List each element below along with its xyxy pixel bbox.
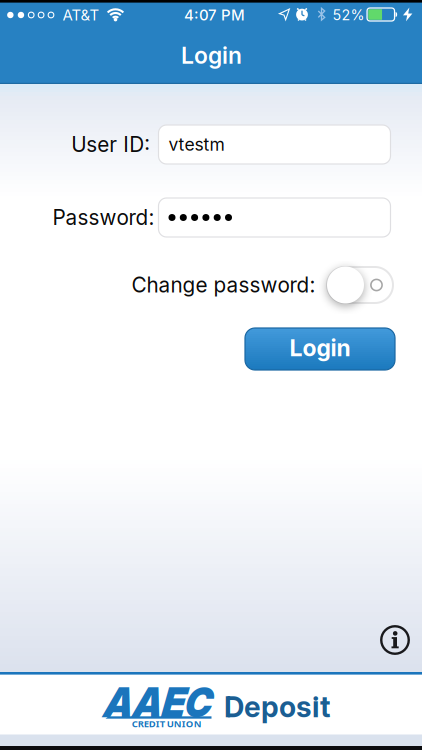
button[interactable]: Change password — [326, 266, 394, 304]
staticText: Password: — [52, 205, 154, 230]
staticText: Change password: — [131, 272, 315, 298]
button[interactable]: Info — [380, 625, 410, 655]
staticText: CREDIT UNION — [132, 717, 202, 730]
staticText: Deposit — [224, 690, 330, 724]
button[interactable]: vtestm — [158, 125, 390, 164]
staticText: AAEC — [97, 678, 215, 727]
staticText: Login — [181, 42, 242, 69]
button[interactable] — [158, 198, 390, 237]
staticText: 4:07 PM — [184, 6, 245, 24]
staticText: User ID: — [71, 132, 150, 157]
staticText: 52% — [332, 6, 364, 24]
staticText: vtestm — [168, 134, 224, 155]
staticText: Login — [289, 334, 350, 362]
button[interactable]: Login — [245, 328, 395, 370]
staticText: AT&T — [62, 6, 99, 24]
